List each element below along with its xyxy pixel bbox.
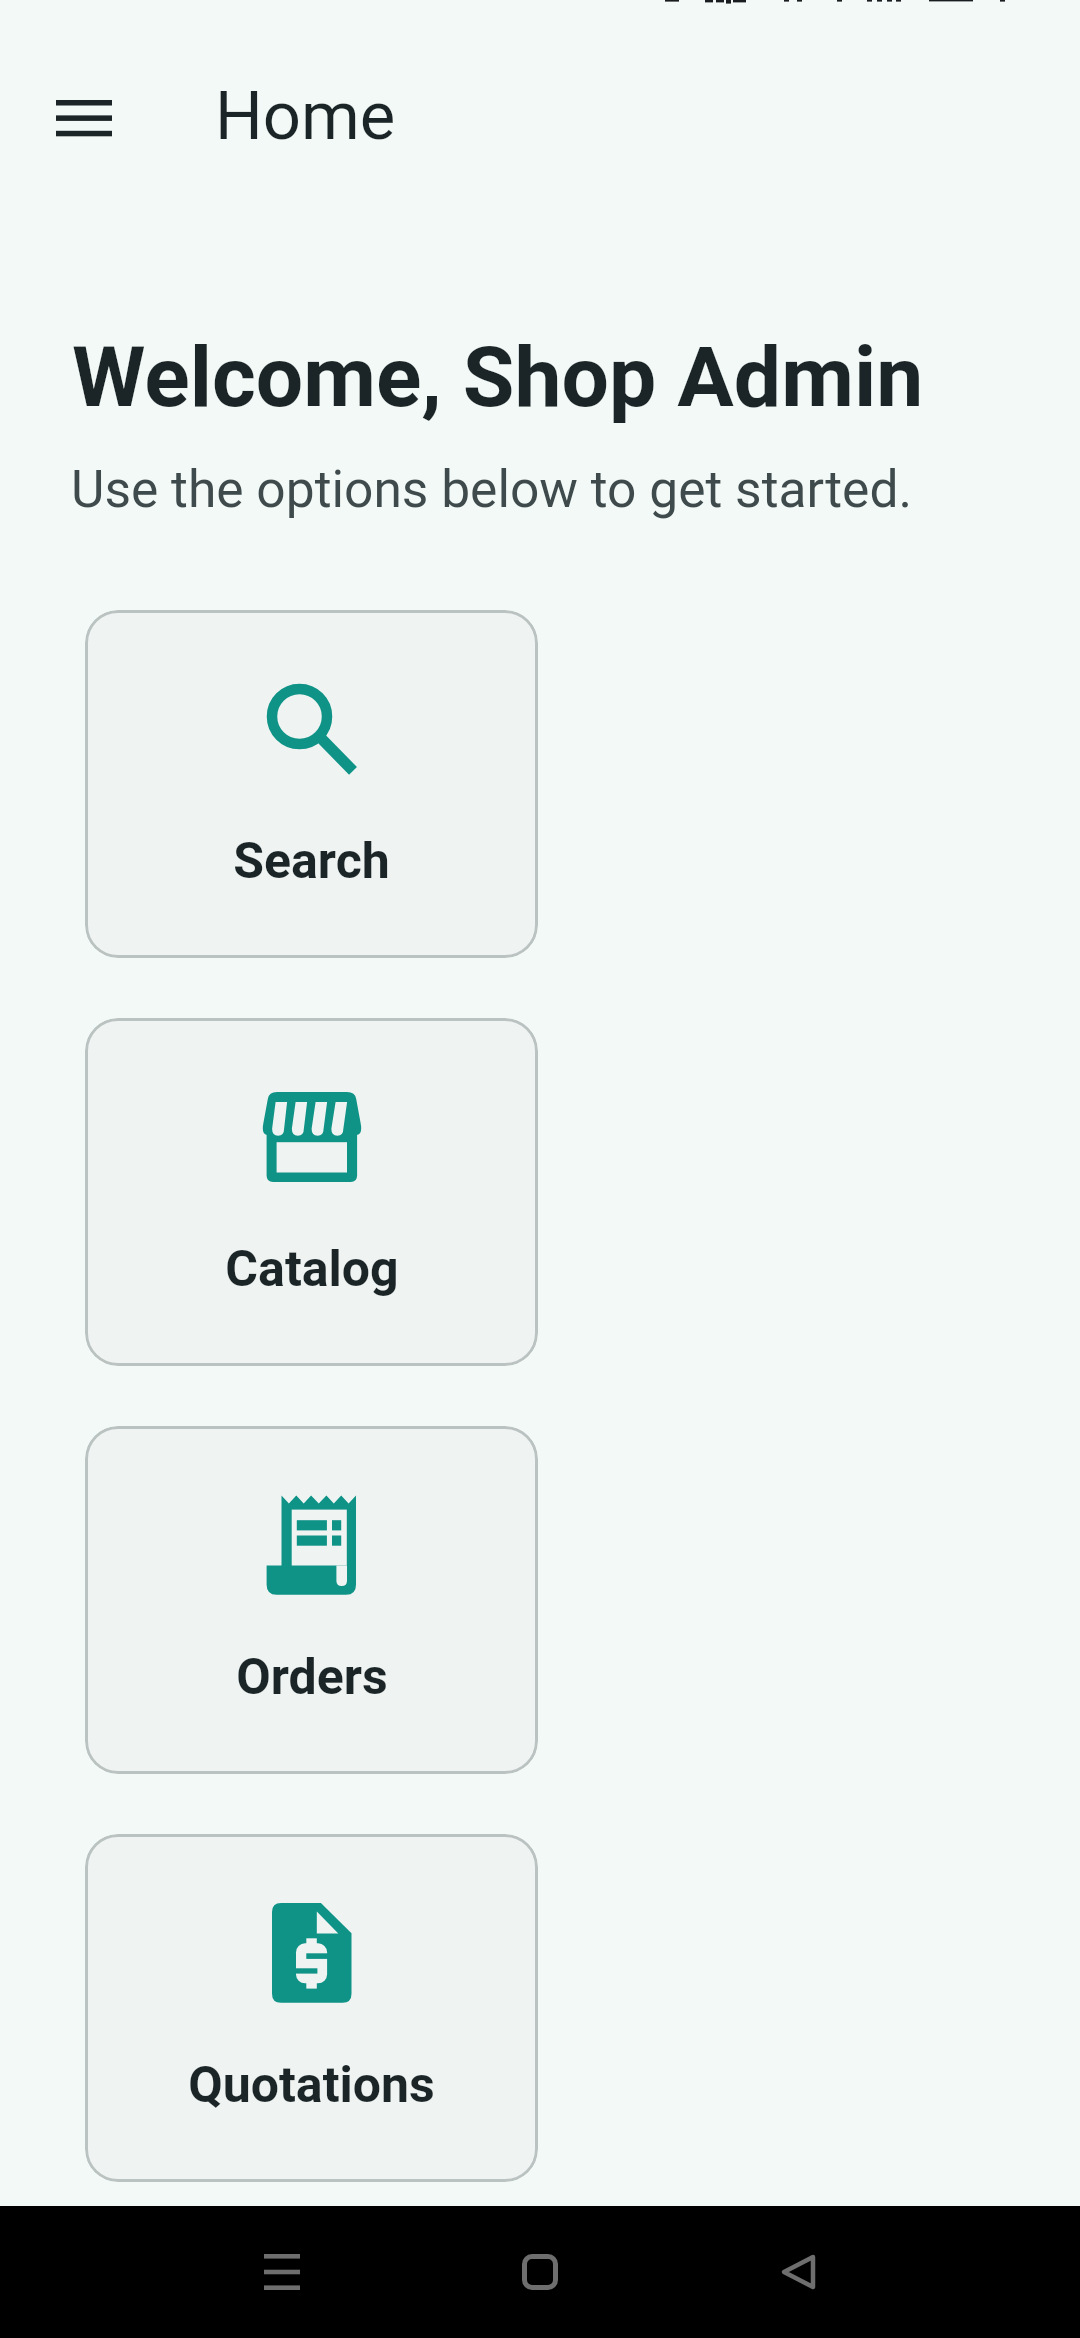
button[interactable]: Search bbox=[85, 610, 538, 958]
button[interactable]: Catalog bbox=[85, 1018, 538, 1366]
button[interactable]: Recent apps bbox=[237, 2227, 327, 2317]
staticText: Search bbox=[233, 832, 390, 891]
staticText: Use the options below to get started. bbox=[71, 459, 913, 519]
staticText: Welcome, Shop Admin bbox=[72, 328, 924, 426]
staticText: Quotations bbox=[188, 2056, 435, 2115]
staticText: Catalog bbox=[225, 1240, 399, 1299]
button[interactable]: Orders bbox=[85, 1426, 538, 1774]
button[interactable]: Open navigation menu bbox=[36, 70, 132, 166]
staticText: Home bbox=[215, 77, 396, 156]
button[interactable]: Quotations bbox=[85, 1834, 538, 2182]
button[interactable]: Back bbox=[753, 2227, 843, 2317]
staticText: Orders bbox=[236, 1648, 388, 1707]
button[interactable]: Home bbox=[495, 2227, 585, 2317]
